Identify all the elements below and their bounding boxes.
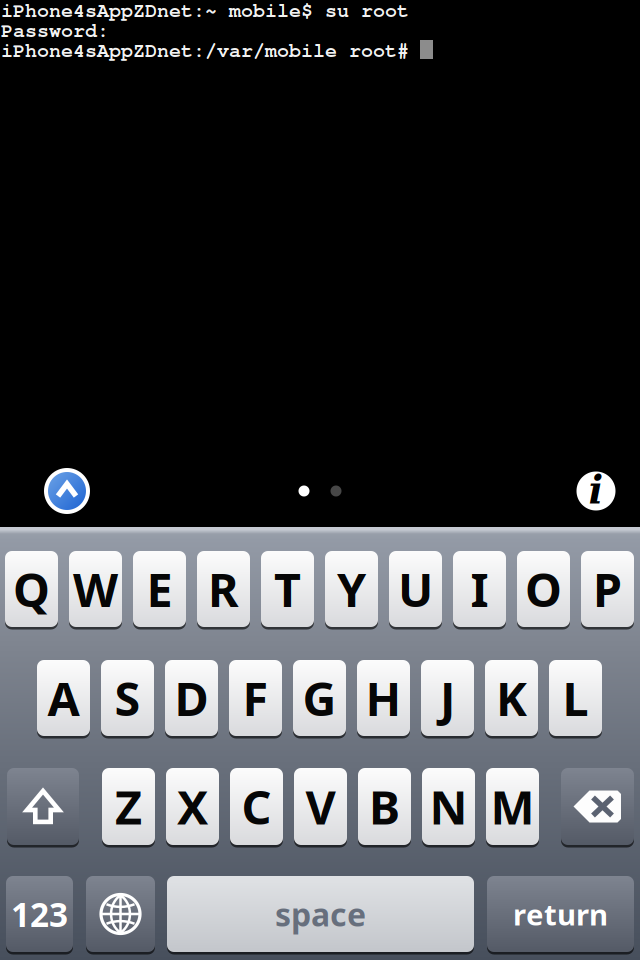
staticText: J (440, 667, 455, 729)
staticText: L (562, 667, 588, 729)
staticText: B (369, 775, 400, 837)
staticText: O (525, 558, 562, 620)
staticText: D (174, 667, 208, 729)
button[interactable]: K (485, 657, 538, 738)
staticText: G (302, 667, 336, 729)
staticText: A (47, 667, 79, 729)
staticText: T (274, 558, 301, 620)
button[interactable]: H (357, 657, 410, 738)
button[interactable]: W (69, 548, 122, 629)
staticText: Q (13, 558, 50, 620)
button[interactable]: J (421, 657, 474, 738)
staticText: C (241, 775, 271, 837)
button[interactable]: L (549, 657, 602, 738)
button[interactable]: R (197, 548, 250, 629)
staticText: 123 (11, 892, 68, 936)
staticText: V (305, 775, 335, 837)
button[interactable]: Q (5, 548, 58, 629)
button[interactable]: B (358, 765, 411, 847)
staticText: U (398, 558, 433, 620)
staticText: R (208, 558, 239, 620)
button[interactable]: Next keyboard (86, 873, 155, 954)
button[interactable]: P (581, 548, 634, 629)
button[interactable]: Scroll up (41, 465, 93, 517)
button[interactable]: Delete (561, 765, 634, 847)
staticText: I (470, 558, 488, 620)
button[interactable]: I (453, 548, 506, 629)
button[interactable]: O (517, 548, 570, 629)
staticText: P (593, 558, 622, 620)
button[interactable]: C (230, 765, 283, 847)
button[interactable]: G (293, 657, 346, 738)
staticText: Y (337, 558, 366, 620)
staticText: E (146, 558, 172, 620)
staticText: Password: (1, 15, 109, 42)
button[interactable]: 123 (6, 873, 73, 954)
staticText: F (242, 667, 268, 729)
button[interactable]: D (165, 657, 218, 738)
staticText: S (114, 667, 140, 729)
button[interactable]: V (294, 765, 347, 847)
button[interactable]: M (486, 765, 539, 847)
staticText: space (275, 893, 366, 935)
staticText: M (490, 775, 534, 837)
staticText: return (513, 894, 608, 933)
staticText: i (588, 467, 603, 513)
staticText: iPhone4sAppZDnet:/var/mobile root# (1, 35, 409, 62)
button[interactable]: Y (325, 548, 378, 629)
button[interactable]: U (389, 548, 442, 629)
button[interactable]: Shift (7, 765, 79, 847)
button[interactable]: S (101, 657, 154, 738)
button[interactable]: N (422, 765, 475, 847)
button[interactable]: return (487, 873, 634, 954)
staticText: W (73, 558, 118, 620)
button[interactable]: E (133, 548, 186, 629)
staticText: H (365, 667, 401, 729)
button[interactable]: A (37, 657, 90, 738)
button[interactable]: F (229, 657, 282, 738)
button[interactable]: Z (102, 765, 155, 847)
button[interactable]: X (166, 765, 219, 847)
staticText: N (429, 775, 467, 837)
staticText: K (496, 667, 527, 729)
button[interactable]: space (167, 873, 474, 954)
staticText: X (177, 775, 208, 837)
button[interactable]: Info (573, 468, 619, 514)
staticText: Z (115, 775, 142, 837)
staticText: iPhone4sAppZDnet:~ mobile$ su root (1, 0, 409, 22)
button[interactable]: T (261, 548, 314, 629)
